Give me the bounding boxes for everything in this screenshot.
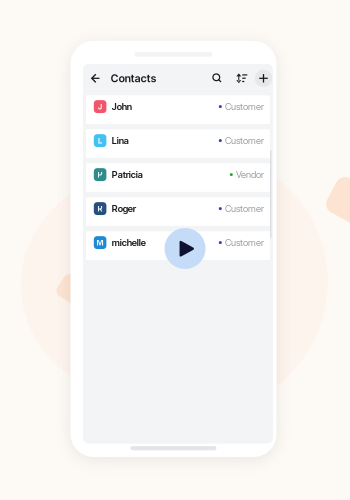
staticText: J — [98, 102, 102, 111]
button[interactable]: P — [86, 163, 270, 192]
button[interactable]: J — [86, 95, 270, 124]
button[interactable]: Add contact — [255, 70, 272, 87]
button[interactable]: Play — [164, 228, 205, 269]
staticText: Customer — [225, 203, 264, 214]
staticText: P — [98, 170, 103, 179]
staticText: Vendor — [236, 169, 264, 180]
staticText: Contacts — [111, 72, 156, 85]
staticText: Lina — [112, 135, 129, 146]
button[interactable]: Back — [87, 70, 103, 86]
button[interactable]: M — [86, 231, 270, 260]
staticText: M — [97, 238, 104, 247]
staticText: Customer — [225, 101, 264, 112]
staticText: Customer — [225, 237, 264, 248]
staticText: michelle — [112, 237, 146, 248]
button[interactable]: L — [86, 129, 270, 158]
staticText: R — [98, 204, 103, 213]
staticText: L — [98, 136, 102, 145]
staticText: Customer — [225, 135, 264, 146]
staticText: Roger — [112, 203, 136, 214]
button[interactable]: R — [86, 197, 270, 226]
staticText: John — [112, 101, 132, 112]
button[interactable]: Search — [210, 71, 225, 86]
button[interactable]: Sort — [234, 71, 249, 86]
staticText: Patricia — [112, 169, 143, 180]
